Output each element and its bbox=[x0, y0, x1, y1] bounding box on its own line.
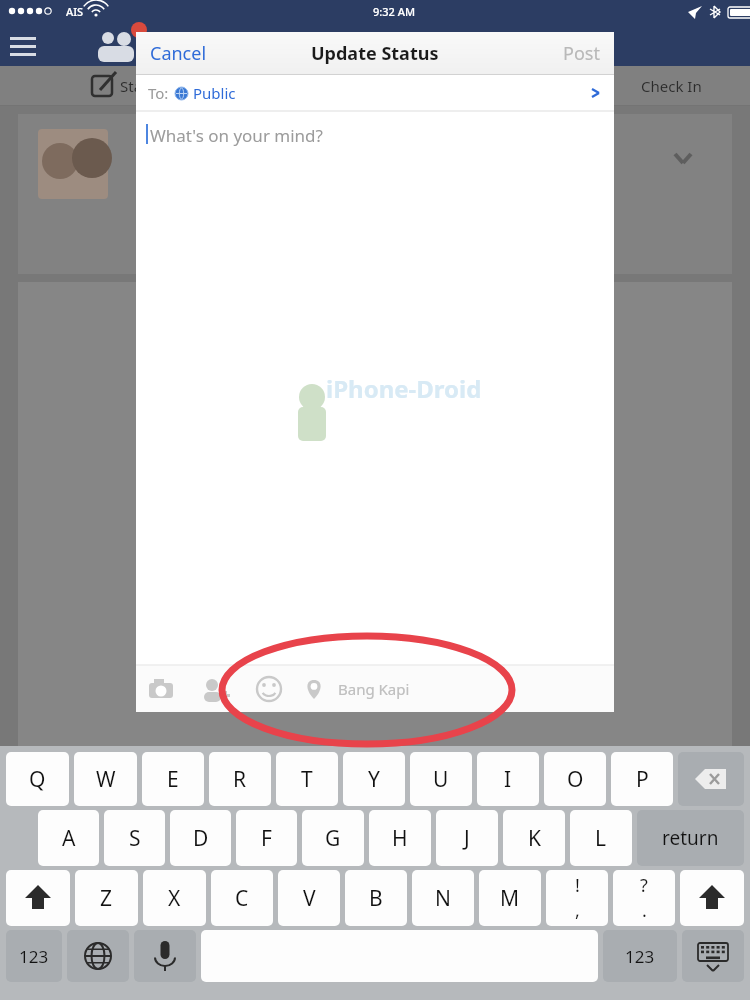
button[interactable]: Post bbox=[549, 33, 614, 74]
button[interactable]: P bbox=[611, 752, 673, 806]
button[interactable]: O bbox=[544, 752, 606, 806]
button[interactable]: N bbox=[412, 870, 474, 926]
staticText: Update Status bbox=[311, 41, 439, 66]
staticText: N bbox=[435, 884, 451, 913]
staticText: G bbox=[325, 824, 341, 853]
button[interactable]: E bbox=[142, 752, 204, 806]
staticText: What's on your mind? bbox=[150, 124, 323, 147]
staticText: ! bbox=[575, 873, 580, 898]
staticText: Y bbox=[368, 765, 380, 794]
button[interactable]: Cancel bbox=[136, 33, 221, 74]
button[interactable]: I bbox=[477, 752, 539, 806]
button[interactable]: return bbox=[637, 810, 744, 866]
staticText: 123 bbox=[19, 945, 49, 968]
button[interactable]: Shift bbox=[6, 870, 70, 926]
staticText: P bbox=[636, 765, 649, 794]
button[interactable]: Backspace bbox=[678, 752, 744, 806]
staticText: F bbox=[261, 824, 272, 853]
staticText: Q bbox=[29, 765, 46, 794]
button[interactable]: R bbox=[209, 752, 271, 806]
button[interactable]: S bbox=[104, 810, 165, 866]
button[interactable]: Add photo bbox=[146, 674, 176, 704]
staticText: E bbox=[167, 765, 179, 794]
staticText: X bbox=[168, 884, 181, 913]
button[interactable]: W bbox=[74, 752, 137, 806]
button[interactable]: C bbox=[211, 870, 273, 926]
staticText: H bbox=[392, 824, 408, 853]
staticText: To: bbox=[148, 83, 169, 103]
button[interactable]: V bbox=[278, 870, 340, 926]
button[interactable]: ! bbox=[546, 870, 608, 926]
button[interactable]: Change language bbox=[67, 930, 129, 982]
staticText: return bbox=[662, 825, 719, 851]
staticText: A bbox=[62, 824, 76, 853]
button[interactable]: U bbox=[410, 752, 472, 806]
button[interactable]: L bbox=[570, 810, 632, 866]
button[interactable]: Feeling bbox=[254, 674, 284, 704]
button[interactable]: Q bbox=[6, 752, 69, 806]
button[interactable]: A bbox=[38, 810, 99, 866]
staticText: Cancel bbox=[150, 41, 207, 66]
staticText: V bbox=[303, 884, 316, 913]
staticText: T bbox=[301, 765, 313, 794]
staticText: Z bbox=[100, 884, 113, 913]
button[interactable]: Dictate bbox=[134, 930, 196, 982]
button[interactable]: To: bbox=[136, 75, 614, 111]
staticText: W bbox=[96, 765, 116, 794]
button[interactable]: Tag people bbox=[200, 674, 230, 704]
button[interactable]: M bbox=[479, 870, 541, 926]
button[interactable]: J bbox=[436, 810, 498, 866]
button[interactable]: What's on your mind? bbox=[136, 112, 614, 665]
button[interactable]: D bbox=[170, 810, 231, 866]
button[interactable]: G bbox=[302, 810, 364, 866]
staticText: , bbox=[575, 898, 580, 923]
button[interactable]: ? bbox=[613, 870, 675, 926]
staticText: U bbox=[433, 765, 449, 794]
button[interactable]: F bbox=[236, 810, 297, 866]
staticText: AIS bbox=[66, 4, 84, 19]
staticText: C bbox=[235, 884, 249, 913]
staticText: I bbox=[504, 765, 512, 794]
staticText: S bbox=[129, 824, 141, 853]
button[interactable]: H bbox=[369, 810, 431, 866]
button[interactable]: 123 bbox=[6, 930, 62, 982]
button[interactable]: X bbox=[143, 870, 206, 926]
staticText: Public bbox=[193, 83, 236, 103]
staticText: Status bbox=[120, 76, 164, 96]
button[interactable]: Bang Kapi bbox=[304, 679, 410, 699]
staticText: . bbox=[642, 898, 647, 923]
staticText: ? bbox=[640, 873, 648, 898]
staticText: M bbox=[500, 884, 520, 913]
staticText: O bbox=[567, 765, 584, 794]
button[interactable]: Z bbox=[75, 870, 138, 926]
staticText: J bbox=[464, 824, 470, 853]
button[interactable]: Y bbox=[343, 752, 405, 806]
button[interactable]: Shift bbox=[680, 870, 744, 926]
staticText: วูสก็า เซเตเลย วิ เหมยร เตนจบฟัด bbox=[186, 937, 564, 978]
staticText: L bbox=[595, 824, 607, 853]
button[interactable]: K bbox=[503, 810, 565, 866]
button[interactable]: T bbox=[276, 752, 338, 806]
staticText: Post bbox=[563, 41, 600, 66]
staticText: Check In bbox=[641, 76, 702, 96]
staticText: B bbox=[369, 884, 383, 913]
staticText: K bbox=[528, 824, 541, 853]
button[interactable]: 123 bbox=[603, 930, 677, 982]
staticText: R bbox=[233, 765, 247, 794]
staticText: 9:32 AM bbox=[373, 4, 416, 19]
staticText: D bbox=[193, 824, 209, 853]
staticText: Bang Kapi bbox=[338, 679, 410, 699]
staticText: iPhone-Droid bbox=[326, 372, 482, 405]
button[interactable]: Hide keyboard bbox=[682, 930, 744, 982]
button[interactable]: B bbox=[345, 870, 407, 926]
staticText: 123 bbox=[625, 945, 655, 968]
